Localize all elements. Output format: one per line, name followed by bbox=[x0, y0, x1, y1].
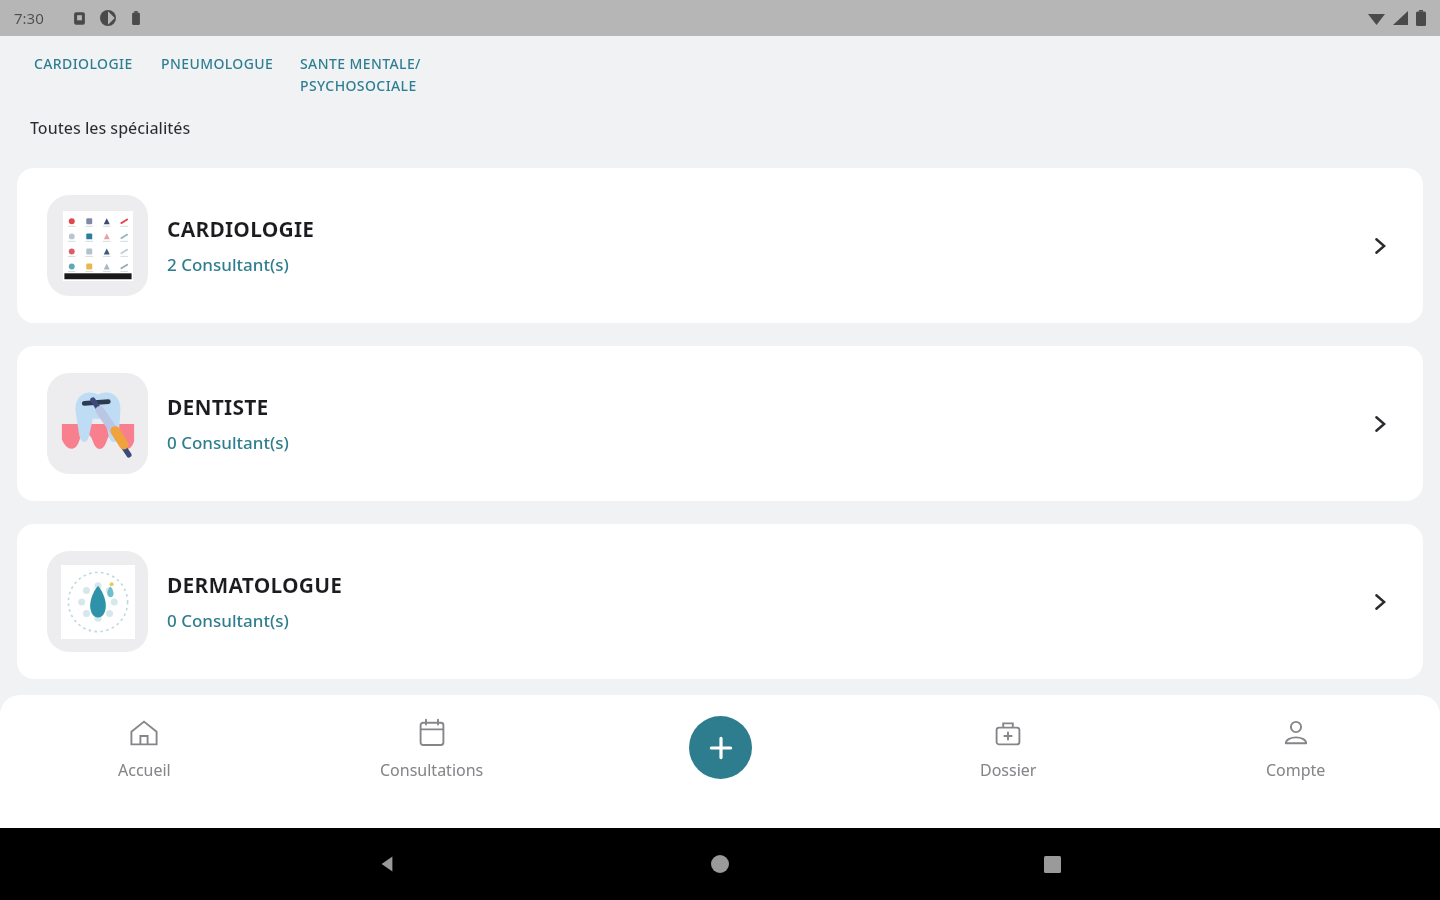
button[interactable]: Back bbox=[365, 841, 411, 887]
staticText: PNEUMOLOGUE bbox=[161, 54, 274, 73]
button[interactable]: CARDIOLOGIE bbox=[34, 54, 133, 73]
button[interactable]: SANTE MENTALE/ PSYCHOSOCIALE bbox=[300, 54, 458, 95]
staticText: Accueil bbox=[118, 759, 171, 781]
button[interactable]: PNEUMOLOGUE bbox=[161, 54, 274, 73]
staticText: DENTISTE bbox=[167, 393, 269, 422]
staticText: DERMATOLOGUE bbox=[167, 571, 343, 600]
button[interactable]: Recent apps bbox=[1029, 841, 1075, 887]
staticText: Dossier bbox=[980, 759, 1037, 781]
staticText: 7:30 bbox=[14, 8, 44, 28]
button[interactable]: DERMATOLOGUE bbox=[17, 524, 1423, 679]
staticText: CARDIOLOGIE bbox=[167, 215, 315, 244]
button[interactable]: Ajouter bbox=[689, 716, 752, 779]
staticText: Compte bbox=[1266, 759, 1326, 781]
button[interactable]: Home bbox=[697, 841, 743, 887]
button[interactable]: Consultations bbox=[288, 716, 576, 783]
staticText: 2 Consultant(s) bbox=[167, 253, 289, 276]
staticText: SANTE MENTALE/ PSYCHOSOCIALE bbox=[300, 54, 421, 95]
button[interactable]: Accueil bbox=[0, 716, 288, 783]
staticText: 0 Consultant(s) bbox=[167, 431, 289, 454]
button[interactable]: DENTISTE bbox=[17, 346, 1423, 501]
staticText: CARDIOLOGIE bbox=[34, 54, 133, 73]
button[interactable]: CARDIOLOGIE bbox=[17, 168, 1423, 323]
staticText: Toutes les spécialités bbox=[30, 117, 191, 139]
button[interactable]: Dossier bbox=[864, 716, 1152, 783]
staticText: Consultations bbox=[380, 759, 484, 781]
staticText: 0 Consultant(s) bbox=[167, 609, 289, 632]
button[interactable]: Compte bbox=[1152, 716, 1440, 783]
